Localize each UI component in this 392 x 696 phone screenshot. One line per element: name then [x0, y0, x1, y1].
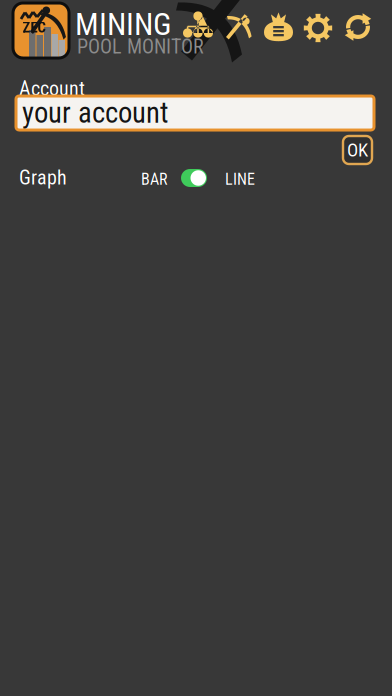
staticText: Account: [19, 77, 85, 100]
staticText: ZEC: [22, 19, 45, 36]
staticText: MINING: [75, 6, 172, 43]
staticText: BAR: [141, 170, 167, 189]
button[interactable]: Settings: [304, 14, 332, 42]
staticText: your account: [22, 96, 168, 130]
button[interactable]: Miners: [225, 13, 253, 41]
button[interactable]: OK: [343, 136, 372, 164]
button[interactable]: Earnings: [263, 12, 295, 42]
staticText: OK: [347, 139, 368, 161]
button[interactable]: Refresh: [344, 13, 372, 41]
staticText: LINE: [225, 170, 255, 189]
button[interactable]: Graph type: [181, 169, 207, 187]
staticText: Graph: [19, 166, 67, 189]
staticText: POOL MONITOR: [77, 35, 204, 58]
button[interactable]: Pools: [184, 11, 212, 39]
